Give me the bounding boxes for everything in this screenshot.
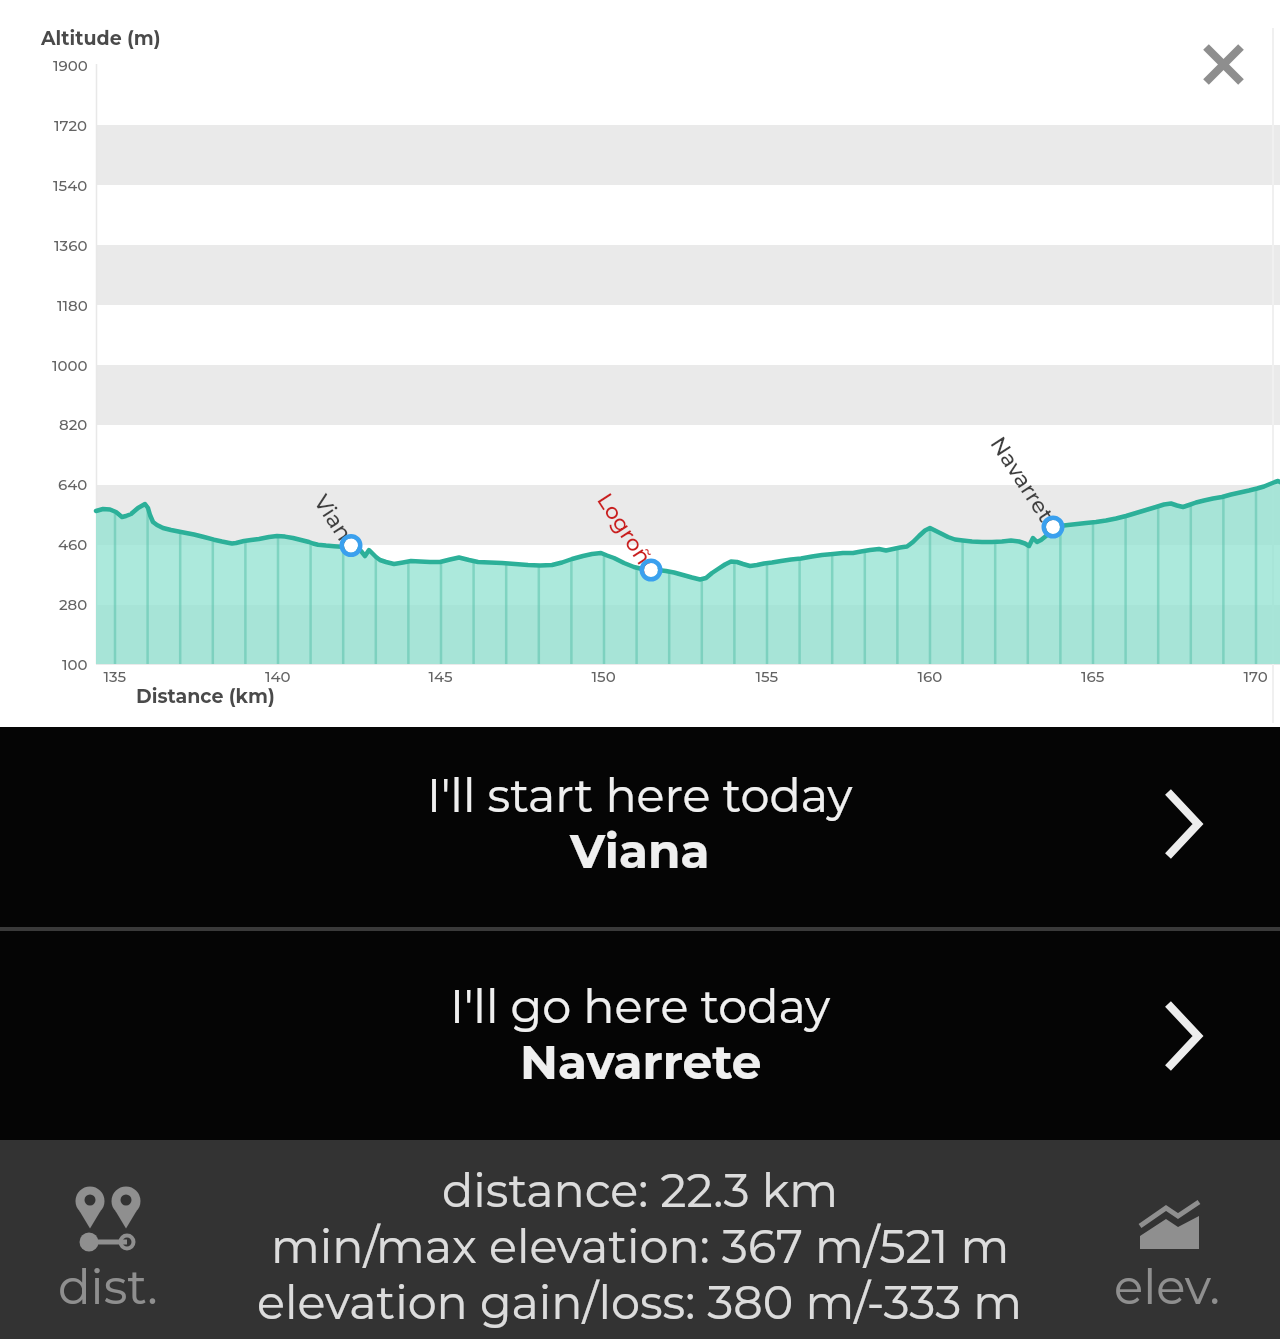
button[interactable]: I'll go here today [0, 931, 1280, 1140]
button[interactable]: dist. [0, 1140, 216, 1339]
staticText: min/max elevation: 367 m/521 m [271, 1218, 1010, 1274]
staticText: Viana [570, 823, 710, 880]
staticText: I'll go here today [450, 978, 831, 1034]
staticText: Navarrete [520, 1034, 762, 1091]
staticText: I'll start here today [427, 767, 853, 823]
staticText: elevation gain/loss: 380 m/-333 m [257, 1274, 1023, 1330]
staticText: distance: 22.3 km [442, 1162, 838, 1218]
staticText: elev. [1114, 1258, 1220, 1317]
button[interactable]: elev. [1054, 1140, 1280, 1339]
staticText: dist. [58, 1258, 158, 1317]
button[interactable]: I'll start here today [0, 727, 1280, 927]
button[interactable] [1174, 32, 1240, 98]
